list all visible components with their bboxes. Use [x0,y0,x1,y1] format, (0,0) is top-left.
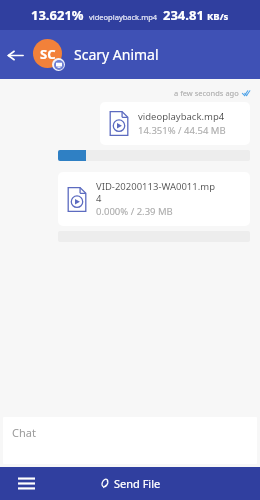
button[interactable]: videoplayback.mp4 [100,102,250,145]
staticText: Scary Animal [74,45,159,64]
button[interactable]: Send File [52,467,208,500]
button[interactable]: Menu [0,467,52,500]
staticText: 234.81 [163,6,204,24]
button[interactable]: Contact avatar [33,39,65,71]
staticText: KB/s [207,10,229,23]
staticText: videoplayback.mp4 [138,110,225,123]
staticText: a few seconds ago [174,88,239,98]
staticText: SC [40,45,56,63]
staticText: videoplayback.mp4 [89,12,158,22]
staticText: 0.000% / 2.39 MB [96,205,173,218]
button[interactable]: VID-20200113-WA0011.mp 4 [58,172,250,226]
staticText: 13.621% [31,6,84,24]
staticText: Send File [114,476,161,491]
staticText: VID-20200113-WA0011.mp 4 [96,180,215,204]
staticText: Chat [12,425,36,440]
staticText: 14.351% / 44.54 MB [138,124,226,137]
button[interactable]: Chat [3,417,257,464]
button[interactable]: Back [0,40,30,70]
